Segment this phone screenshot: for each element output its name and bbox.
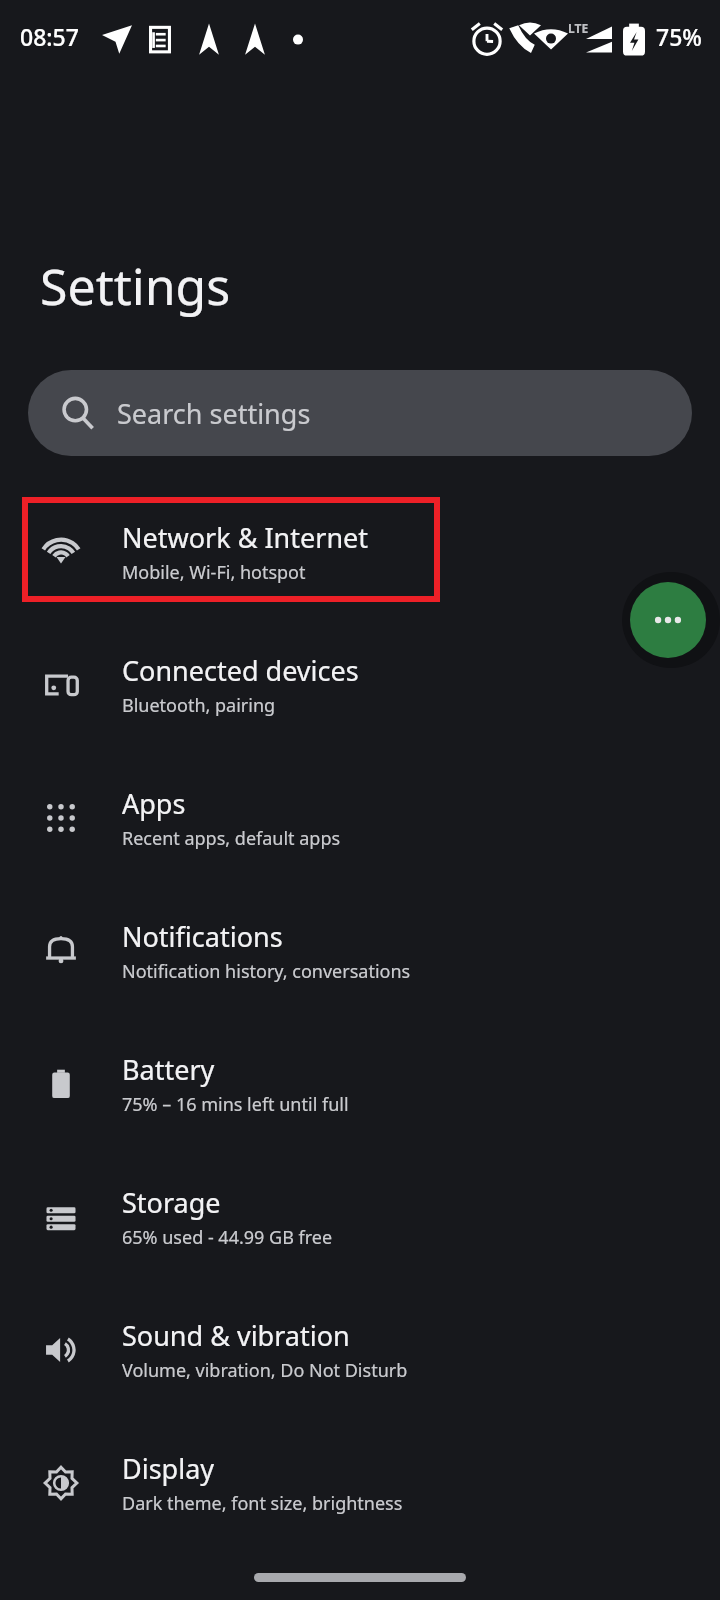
button[interactable]: More options: [630, 582, 706, 658]
staticText: Volume, vibration, Do Not Disturb: [122, 1358, 408, 1383]
button[interactable]: Storage: [0, 1150, 720, 1283]
button[interactable]: Notifications: [0, 884, 720, 1017]
staticText: LTE: [568, 20, 589, 36]
button[interactable]: Apps: [0, 751, 720, 884]
staticText: Network & Internet: [122, 519, 369, 556]
staticText: Settings: [40, 252, 231, 320]
button[interactable]: Sound & vibration: [0, 1283, 720, 1416]
button[interactable]: Connected devices: [0, 618, 720, 751]
button[interactable]: Display: [0, 1416, 720, 1549]
staticText: Sound & vibration: [122, 1317, 350, 1354]
staticText: 75%: [656, 21, 702, 52]
staticText: Display: [122, 1450, 215, 1487]
staticText: 08:57: [20, 21, 79, 52]
staticText: Notifications: [122, 918, 283, 955]
staticText: 65% used - 44.99 GB free: [122, 1225, 333, 1250]
staticText: Battery: [122, 1051, 215, 1088]
button[interactable]: Network & Internet: [0, 485, 720, 618]
button[interactable]: Battery: [0, 1017, 720, 1150]
staticText: Connected devices: [122, 652, 359, 689]
staticText: Recent apps, default apps: [122, 826, 341, 851]
staticText: Notification history, conversations: [122, 959, 411, 984]
staticText: Bluetooth, pairing: [122, 693, 276, 718]
staticText: Storage: [122, 1184, 221, 1221]
staticText: Apps: [122, 785, 186, 822]
button[interactable]: Search settings: [28, 370, 692, 456]
staticText: 75% – 16 mins left until full: [122, 1092, 349, 1117]
staticText: Dark theme, font size, brightness: [122, 1491, 403, 1516]
staticText: Search settings: [117, 395, 311, 432]
staticText: Mobile, Wi-Fi, hotspot: [122, 560, 306, 585]
